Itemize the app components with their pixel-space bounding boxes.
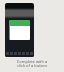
staticText: Complete with a click of a button — [0, 59, 64, 68]
button[interactable] — [9, 20, 30, 40]
button[interactable]: Device preview — [5, 3, 34, 57]
